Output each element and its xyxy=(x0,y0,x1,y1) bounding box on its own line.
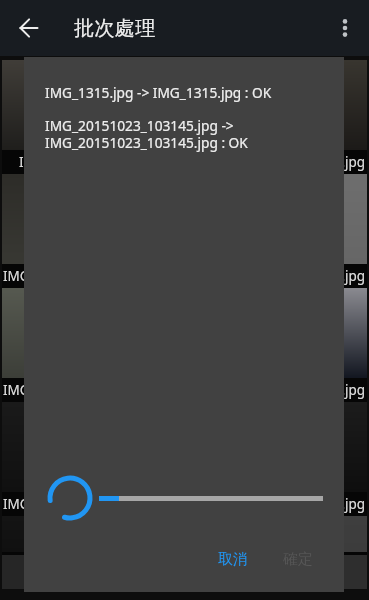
button[interactable]: More options xyxy=(327,10,363,46)
staticText: IMG_20151023.jpg xyxy=(247,381,366,399)
staticText: 取消 xyxy=(218,550,248,569)
staticText: IMG_20151023.jpg xyxy=(3,267,122,285)
staticText: IMG_20151023.jpg xyxy=(125,495,244,513)
button[interactable]: 確定 xyxy=(264,542,344,577)
staticText: IMG_1315.jpg -> IMG_1315.jpg : OK IMG_20… xyxy=(45,83,272,152)
staticText: IMG_20151023.jpg xyxy=(247,267,366,285)
staticText: IMG_20151023.jpg xyxy=(247,495,366,513)
staticText: 確定 xyxy=(283,550,313,569)
staticText: 批次處理 xyxy=(74,15,156,41)
staticText: IMG_20151023.jpg xyxy=(3,495,122,513)
staticText: IMG_20151023.jpg xyxy=(247,153,366,171)
staticText: IMG_1315.jpg xyxy=(19,153,107,171)
button[interactable]: 取消 xyxy=(202,542,264,577)
button[interactable]: Back xyxy=(13,12,45,44)
staticText: IMG_20151023.jpg xyxy=(3,381,122,399)
